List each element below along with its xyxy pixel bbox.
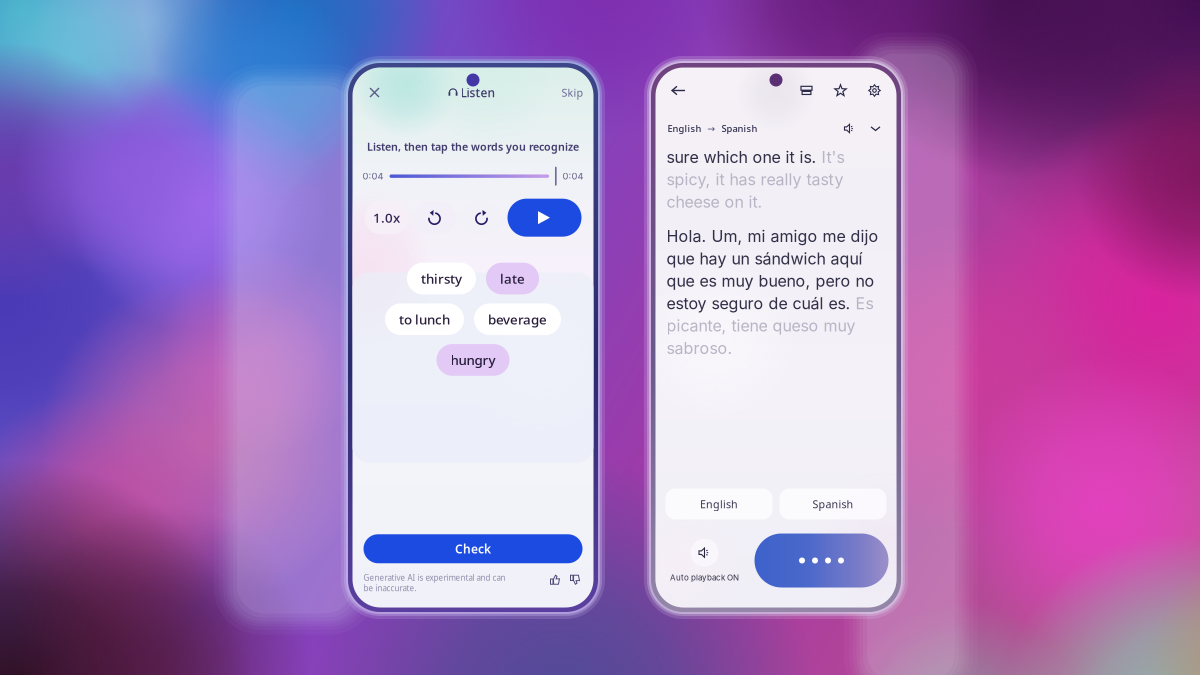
staticText: 0:04: [562, 170, 583, 182]
staticText: spicy, it has really tasty: [666, 170, 843, 189]
staticText: beverage: [488, 310, 547, 328]
staticText: It's: [816, 147, 844, 167]
button[interactable]: Listening: [754, 533, 888, 587]
staticText: estoy seguro de cuál es.: [666, 294, 850, 313]
staticText: que hay un sándwich aquí: [666, 249, 862, 268]
staticText: Es: [850, 294, 873, 313]
staticText: English: [667, 122, 701, 135]
staticText: que es muy bueno, pero no: [666, 271, 874, 291]
button[interactable]: Favorite: [829, 79, 851, 101]
button[interactable]: late: [486, 263, 539, 294]
staticText: picante, tiene queso muy: [666, 316, 855, 335]
staticText: English: [700, 497, 738, 511]
staticText: Spanish: [721, 122, 757, 135]
button[interactable]: Check: [363, 534, 582, 563]
staticText: Check: [455, 541, 491, 557]
staticText: hungry: [450, 351, 495, 369]
button[interactable]: Back: [666, 78, 690, 102]
button[interactable]: 1.0x: [364, 201, 408, 234]
staticText: Listen, then tap the words you recognize: [367, 139, 579, 154]
staticText: cheese on it.: [666, 192, 762, 212]
staticText: 1.0x: [373, 209, 400, 226]
staticText: to lunch: [399, 310, 450, 328]
button[interactable]: beverage: [474, 303, 561, 335]
staticText: 0:04: [362, 170, 383, 182]
staticText: Auto playback ON: [670, 573, 739, 582]
button[interactable]: Forward 10 seconds: [460, 201, 502, 234]
staticText: Generative AI is experimental and can be…: [363, 572, 505, 593]
button[interactable]: Good response: [547, 572, 562, 587]
staticText: sure which one it is.: [666, 147, 816, 167]
button[interactable]: Settings: [863, 79, 885, 101]
button[interactable]: Spanish: [779, 488, 886, 519]
button[interactable]: Bad response: [567, 572, 582, 587]
button[interactable]: Speak: [840, 119, 858, 137]
button[interactable]: Close: [362, 80, 386, 104]
staticText: Skip: [561, 85, 583, 100]
staticText: Spanish: [812, 497, 853, 511]
staticText: →: [701, 123, 721, 134]
button[interactable]: Rewind 10 seconds: [413, 201, 455, 234]
staticText: sabroso.: [666, 338, 732, 358]
button[interactable]: thirsty: [407, 263, 476, 294]
button[interactable]: to lunch: [385, 303, 464, 335]
staticText: thirsty: [421, 270, 462, 287]
staticText: Hola. Um, mi amigo me dijo: [666, 227, 878, 246]
button[interactable]: hungry: [436, 344, 509, 376]
button[interactable]: Skip: [557, 80, 583, 104]
staticText: Listen: [460, 84, 495, 100]
button[interactable]: English: [665, 488, 772, 519]
button[interactable]: Collapse: [866, 119, 884, 137]
button[interactable]: Transcript: [795, 79, 817, 101]
staticText: late: [500, 270, 525, 287]
button[interactable]: Play: [507, 199, 581, 237]
button[interactable]: Auto playback: [690, 539, 718, 567]
